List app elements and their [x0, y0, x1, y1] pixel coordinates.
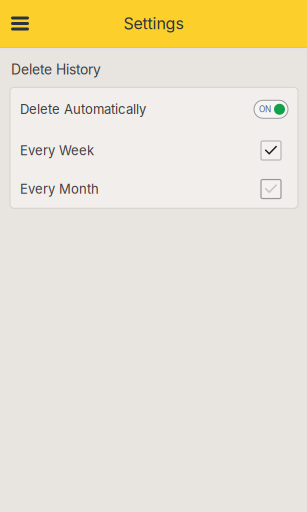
staticText: Delete History	[11, 61, 101, 78]
staticText: Settings	[123, 14, 183, 33]
button[interactable]: Menu	[0, 0, 41, 47]
staticText: ON	[259, 104, 271, 114]
button[interactable]: Delete Automatically	[10, 87, 298, 131]
staticText: Delete Automatically	[20, 101, 146, 117]
staticText: Every Week	[20, 143, 94, 158]
staticText: Every Month	[20, 181, 99, 197]
button[interactable]: Every Week	[10, 131, 298, 170]
button[interactable]: Every Month	[10, 170, 298, 208]
